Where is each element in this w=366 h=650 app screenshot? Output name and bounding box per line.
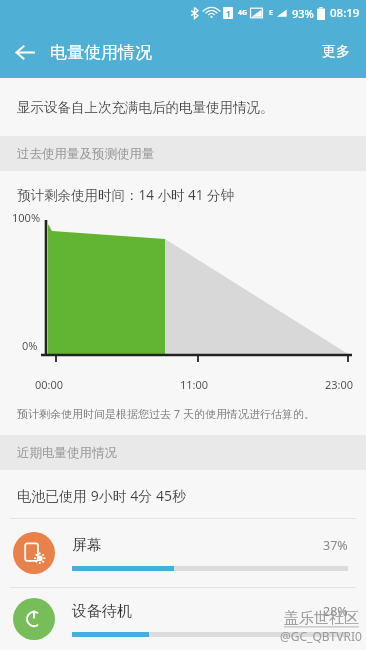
staticText: 预计剩余使用时间是根据您过去 7 天的使用情况进行估算的。 [17,406,316,421]
staticText: 93% [292,6,314,21]
staticText: 过去使用量及预测使用量 [17,146,155,162]
staticText: 近期电量使用情况 [17,445,117,461]
staticText: 23:00 [325,377,354,392]
staticText: 更多 [322,43,350,61]
staticText: @GC_QBTVRI0 [280,628,362,644]
staticText: 37% [323,537,348,554]
staticText: E [269,8,273,18]
staticText: 预计剩余使用时间：14 小时 41 分钟 [17,186,234,204]
staticText: 1 [226,8,231,19]
button[interactable]: Back [0,27,50,77]
button[interactable]: 设备待机 [0,588,366,650]
staticText: 0% [22,338,38,353]
staticText: 4G [238,8,248,18]
staticText: 设备待机 [72,602,132,621]
staticText: 电量使用情况 [50,42,152,63]
staticText: 盖乐世社区 [284,609,359,628]
staticText: 显示设备自上次充满电后的电量使用情况。 [17,99,274,116]
staticText: 28% [323,603,348,620]
staticText: 08:19 [330,5,360,21]
staticText: 100% [12,210,41,225]
staticText: 屏幕 [72,536,102,555]
button[interactable]: 更多 [306,31,366,73]
staticText: 电池已使用 9小时 4分 45秒 [17,486,186,505]
staticText: 00:00 [35,377,64,392]
staticText: 11:00 [180,377,209,392]
button[interactable]: 屏幕 [0,519,366,587]
